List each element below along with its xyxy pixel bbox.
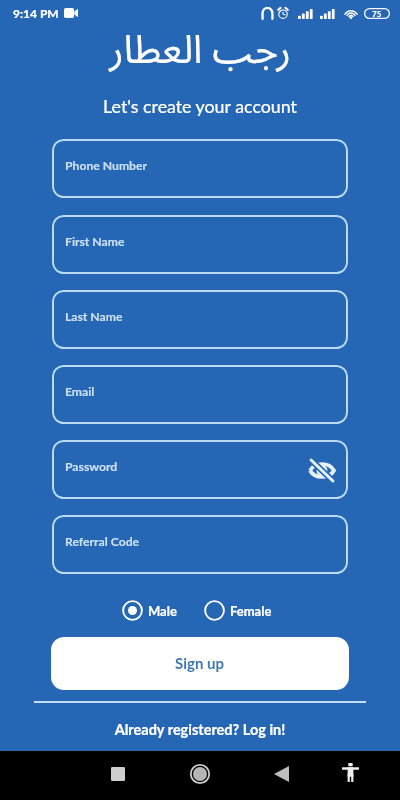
staticText: 75 (372, 9, 382, 19)
staticText: Male (148, 603, 177, 619)
button[interactable]: Phone Number (52, 139, 348, 198)
staticText: Last Name (65, 309, 123, 324)
staticText: 9:14 PM (13, 6, 59, 20)
staticText: رجب العطار (0, 9, 400, 91)
staticText: Let's create your account (0, 95, 400, 116)
staticText: Referral Code (65, 534, 140, 549)
button[interactable]: Sign up (51, 637, 349, 690)
button[interactable]: Female (204, 600, 272, 621)
button[interactable]: Password (52, 440, 348, 499)
staticText: Phone Number (65, 158, 148, 173)
button[interactable]: Toggle password visibility (308, 456, 336, 484)
button[interactable]: Accessibility (335, 757, 365, 787)
button[interactable]: Referral Code (52, 515, 348, 574)
staticText: Password (65, 459, 118, 474)
button[interactable]: Back (266, 759, 296, 789)
button[interactable]: Already registered? Log in! (0, 721, 400, 738)
button[interactable]: Recents (103, 759, 133, 789)
staticText: Female (230, 603, 272, 619)
button[interactable]: Last Name (52, 290, 348, 349)
staticText: Sign up (175, 654, 225, 672)
button[interactable]: First Name (52, 215, 348, 274)
button[interactable]: Home (185, 759, 215, 789)
staticText: Email (65, 384, 95, 399)
button[interactable]: Male (122, 600, 177, 621)
staticText: First Name (65, 234, 125, 249)
button[interactable]: Email (52, 365, 348, 424)
